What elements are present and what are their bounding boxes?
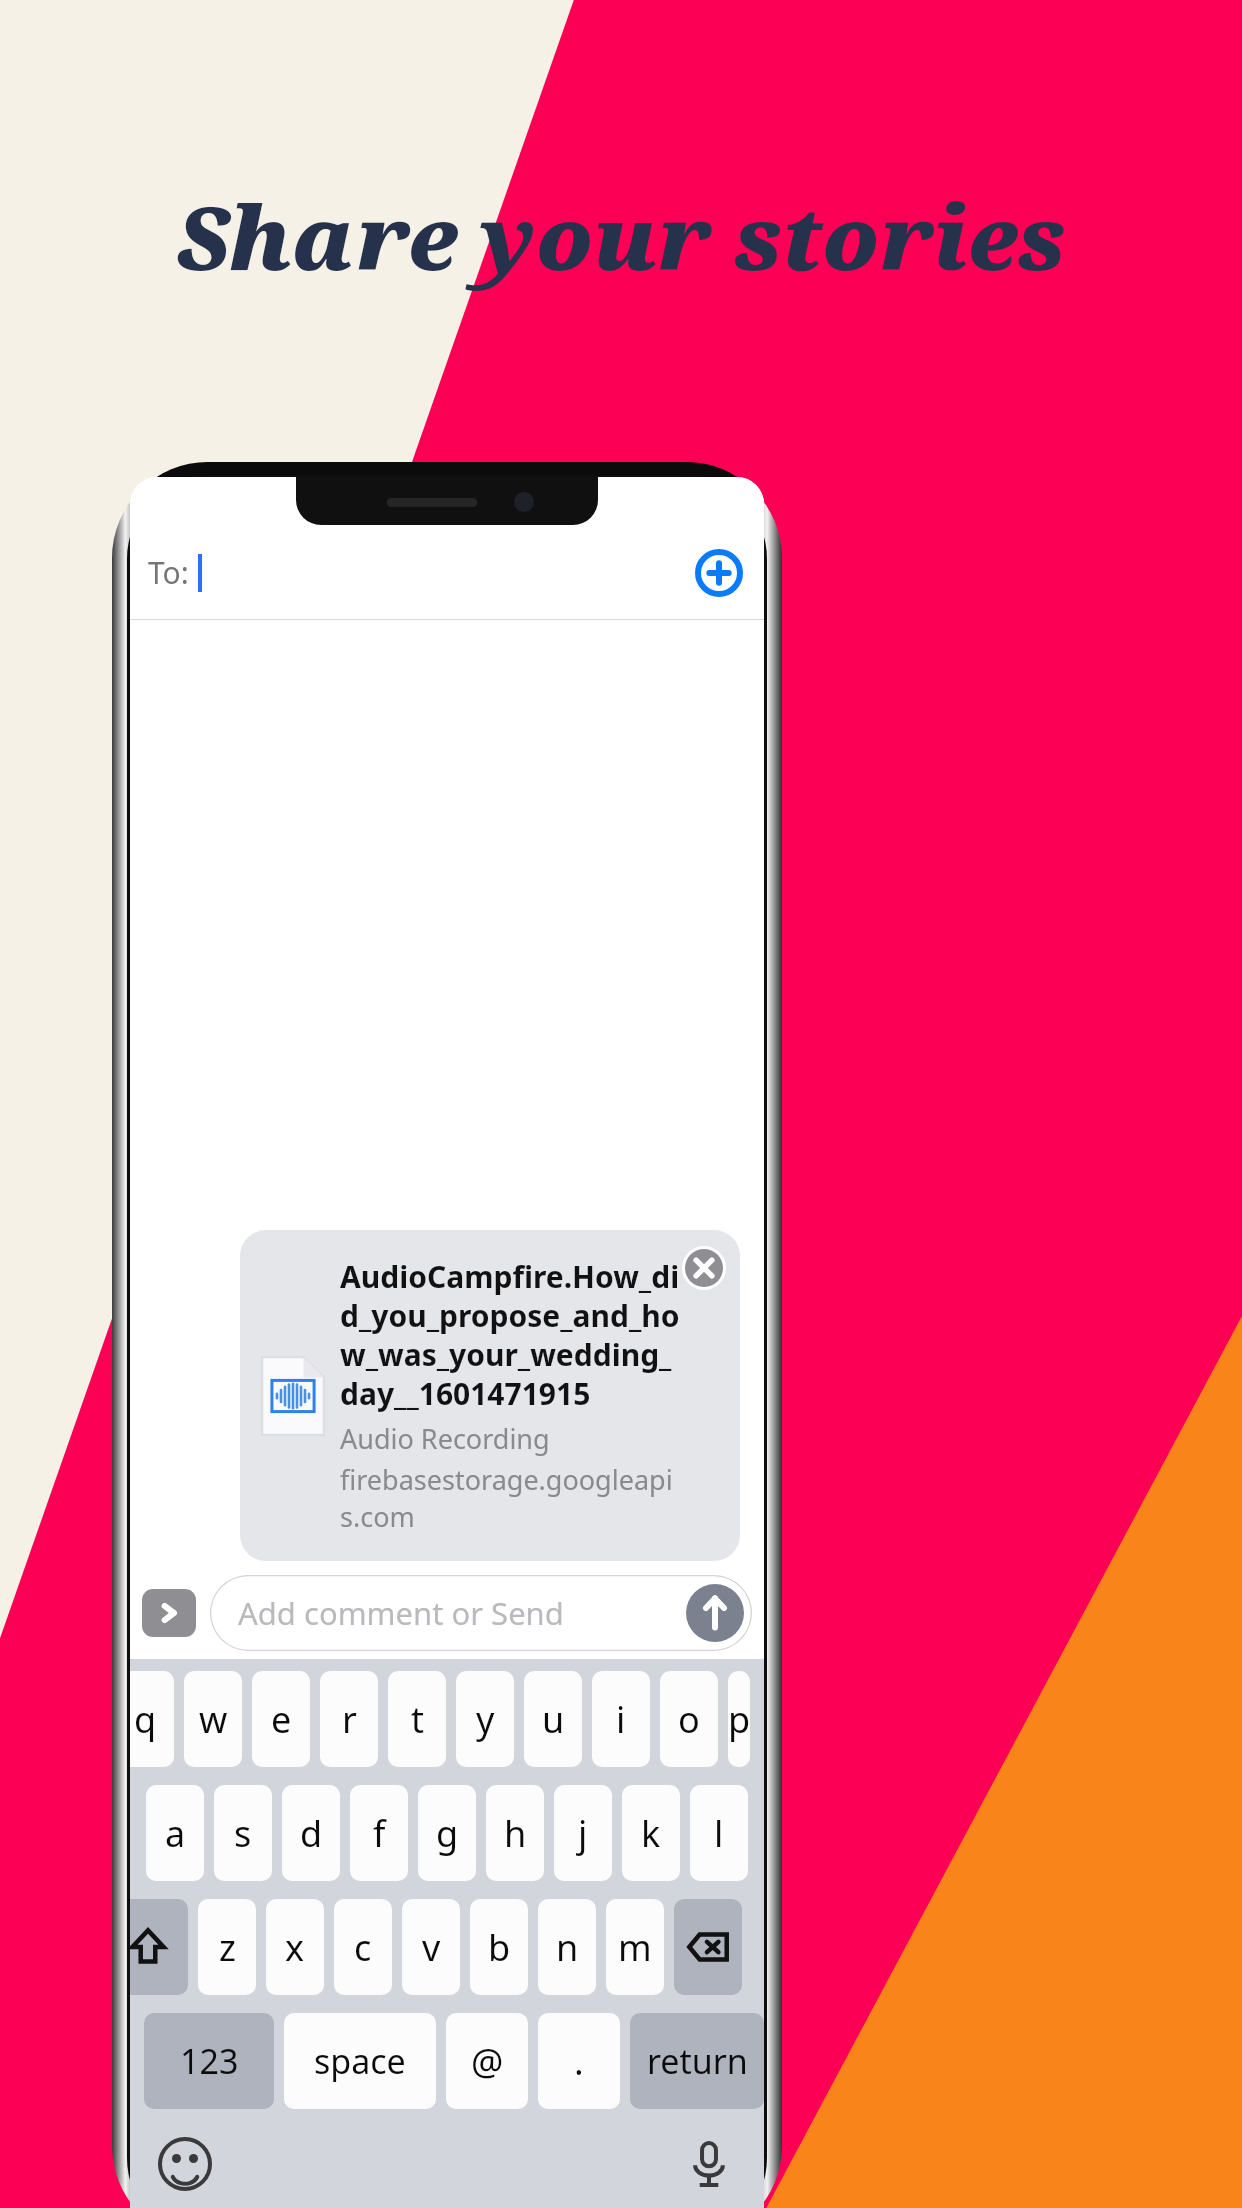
button[interactable]: d xyxy=(282,1785,340,1881)
button[interactable]: y xyxy=(456,1671,514,1767)
button[interactable]: @ xyxy=(446,2013,528,2109)
staticText: i xyxy=(616,1695,626,1744)
button[interactable]: n xyxy=(538,1899,596,1995)
button[interactable]: Emoji xyxy=(156,2135,214,2193)
button[interactable]: t xyxy=(388,1671,446,1767)
staticText: c xyxy=(354,1923,372,1972)
button[interactable]: Key xyxy=(130,1899,188,1995)
staticText: y xyxy=(476,1695,495,1744)
button[interactable]: i xyxy=(592,1671,650,1767)
staticText: To: xyxy=(148,552,189,593)
staticText: n xyxy=(556,1923,579,1972)
button[interactable]: r xyxy=(320,1671,378,1767)
staticText: o xyxy=(678,1695,700,1744)
button[interactable]: To: xyxy=(130,525,764,620)
staticText: j xyxy=(578,1809,588,1858)
staticText: h xyxy=(504,1809,527,1858)
button[interactable]: x xyxy=(266,1899,324,1995)
button[interactable]: k xyxy=(622,1785,680,1881)
button[interactable]: j xyxy=(554,1785,612,1881)
staticText: p xyxy=(728,1695,750,1744)
button[interactable]: Expand apps xyxy=(142,1589,196,1637)
button[interactable]: h xyxy=(486,1785,544,1881)
button[interactable]: f xyxy=(350,1785,408,1881)
button[interactable]: u xyxy=(524,1671,582,1767)
staticText: firebasestorage.googleapis.com xyxy=(340,1461,682,1535)
staticText: m xyxy=(618,1923,652,1972)
staticText: return xyxy=(647,2038,748,2084)
button[interactable]: s xyxy=(214,1785,272,1881)
button[interactable]: . xyxy=(538,2013,620,2109)
staticText: f xyxy=(373,1809,386,1858)
staticText: w xyxy=(199,1695,228,1744)
staticText: g xyxy=(436,1809,459,1858)
staticText: r xyxy=(342,1695,357,1744)
button[interactable]: c xyxy=(334,1899,392,1995)
button[interactable]: a xyxy=(146,1785,204,1881)
staticText: Add comment or Send xyxy=(238,1592,564,1634)
button[interactable]: space xyxy=(284,2013,436,2109)
staticText: t xyxy=(411,1695,424,1744)
staticText: e xyxy=(271,1695,292,1744)
staticText: AudioCampfire.How_did_you_propose_and_ho… xyxy=(340,1256,682,1413)
button[interactable]: AudioCampfire.How_did_you_propose_and_ho… xyxy=(240,1230,740,1561)
button[interactable]: Send xyxy=(686,1584,744,1642)
button[interactable]: o xyxy=(660,1671,718,1767)
button[interactable]: w xyxy=(184,1671,242,1767)
button[interactable]: e xyxy=(252,1671,310,1767)
staticText: . xyxy=(574,2037,584,2086)
staticText: s xyxy=(234,1809,252,1858)
staticText: d xyxy=(300,1809,323,1858)
button[interactable]: 123 xyxy=(144,2013,274,2109)
staticText: b xyxy=(488,1923,511,1972)
staticText: Share your stories xyxy=(0,176,1242,296)
button[interactable]: Key xyxy=(674,1899,742,1995)
button[interactable]: return xyxy=(630,2013,764,2109)
button[interactable]: p xyxy=(728,1671,750,1767)
button[interactable]: Dictate xyxy=(680,2135,738,2193)
button[interactable]: Add comment or Send xyxy=(210,1575,752,1651)
button[interactable]: m xyxy=(606,1899,664,1995)
button[interactable]: Add contact xyxy=(694,548,744,598)
button[interactable]: v xyxy=(402,1899,460,1995)
staticText: z xyxy=(219,1923,236,1972)
staticText: a xyxy=(165,1809,186,1858)
staticText: 123 xyxy=(180,2038,239,2084)
staticText: q xyxy=(134,1695,157,1744)
staticText: Audio Recording xyxy=(340,1420,550,1457)
button[interactable]: Remove attachment xyxy=(682,1246,726,1290)
staticText: u xyxy=(542,1695,565,1744)
staticText: v xyxy=(422,1923,441,1972)
staticText: space xyxy=(314,2038,406,2084)
button[interactable]: z xyxy=(198,1899,256,1995)
staticText: @ xyxy=(471,2037,504,2086)
button[interactable]: q xyxy=(130,1671,174,1767)
staticText: k xyxy=(641,1809,661,1858)
button[interactable]: l xyxy=(690,1785,748,1881)
staticText: x xyxy=(285,1923,305,1972)
button[interactable]: g xyxy=(418,1785,476,1881)
staticText: l xyxy=(714,1809,724,1858)
button[interactable]: b xyxy=(470,1899,528,1995)
